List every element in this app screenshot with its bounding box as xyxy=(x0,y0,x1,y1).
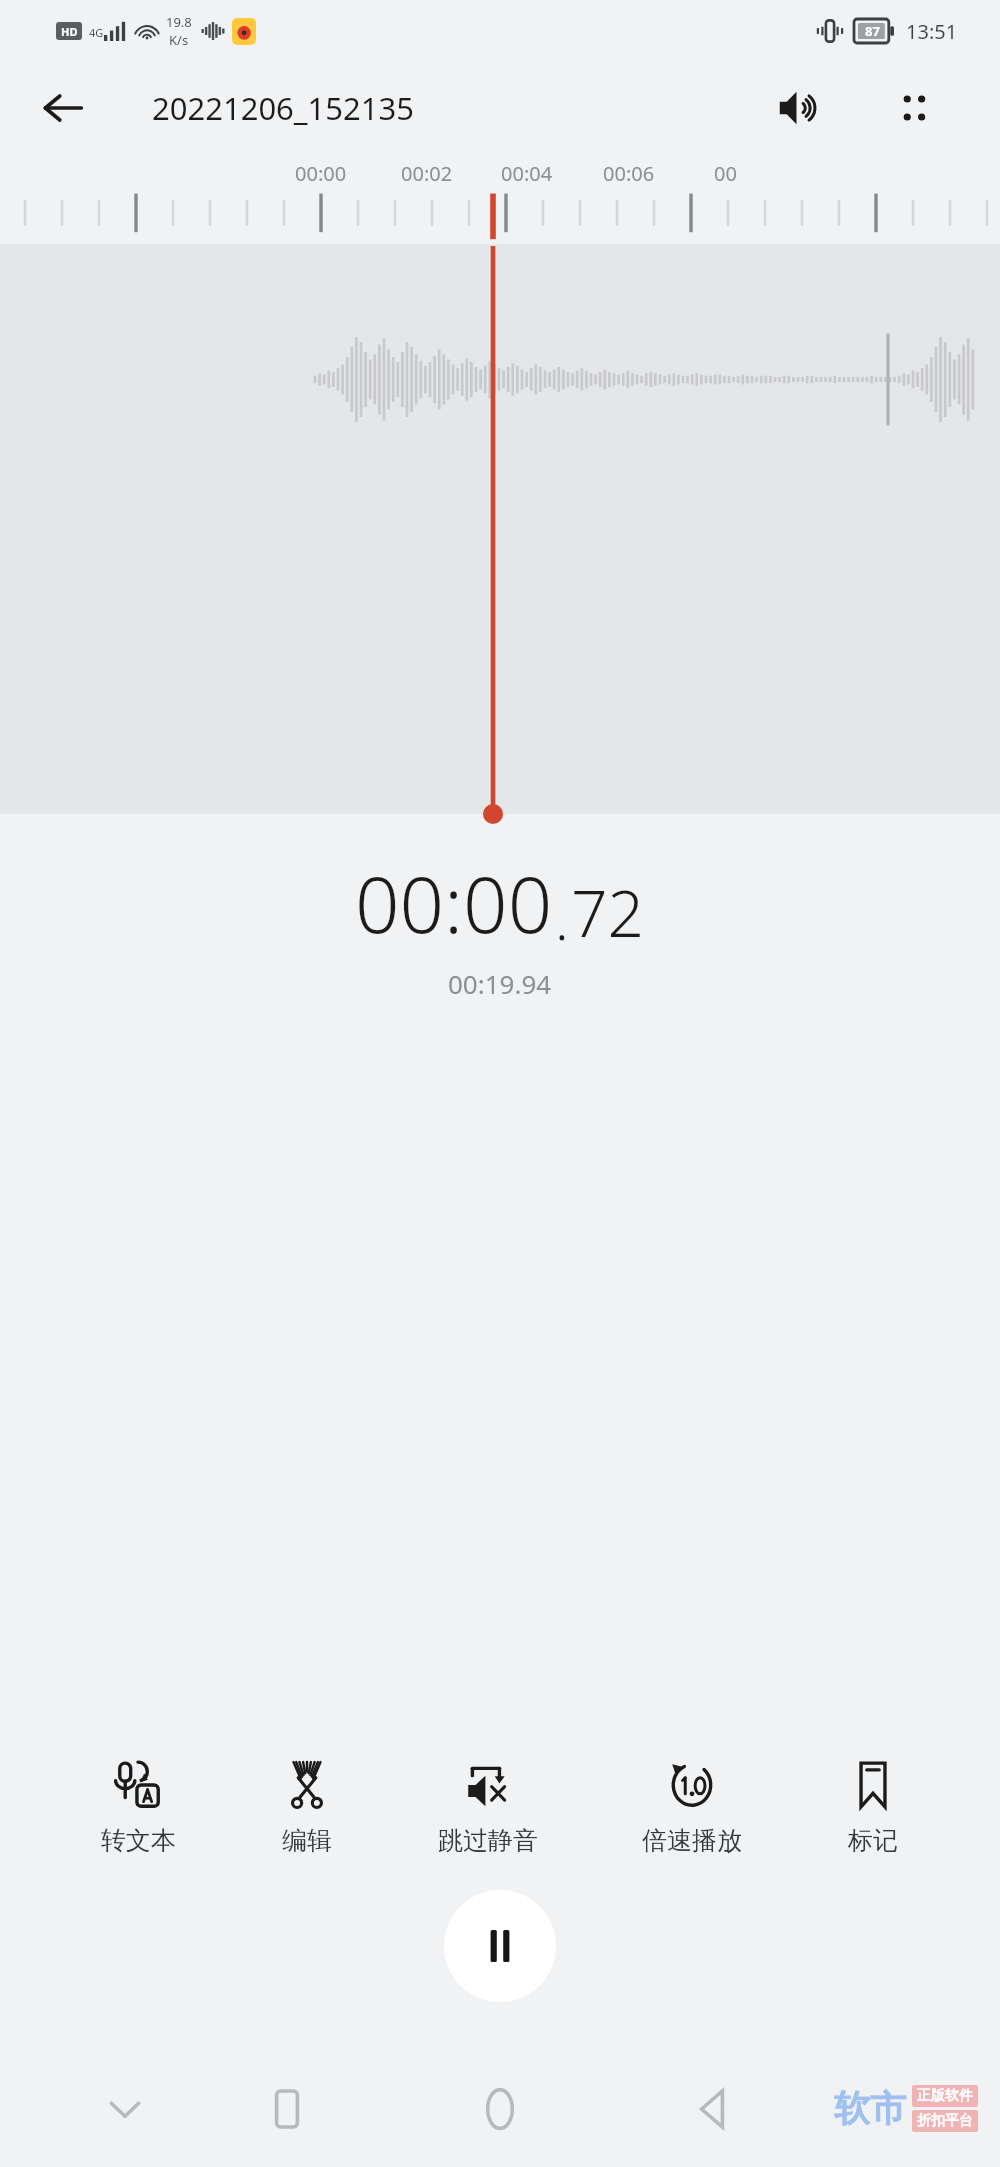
staticText: 软市 xyxy=(834,2086,906,2131)
staticText: 正版软件 xyxy=(917,2087,973,2105)
button[interactable]: 倍速播放 xyxy=(628,1749,756,1866)
button[interactable]: 跳过静音 xyxy=(424,1749,552,1866)
button[interactable]: Recent apps xyxy=(249,2071,325,2147)
staticText: 转文本 xyxy=(101,1825,176,1856)
staticText: 倍速播放 xyxy=(642,1825,742,1856)
button[interactable]: Back xyxy=(34,79,92,137)
staticText: 72 xyxy=(571,869,645,956)
staticText: 00:02 xyxy=(401,160,453,187)
button[interactable]: Collapse xyxy=(87,2071,163,2147)
staticText: 跳过静音 xyxy=(438,1825,538,1856)
staticText: 87 xyxy=(865,22,880,40)
staticText: 编辑 xyxy=(282,1825,332,1856)
staticText: 折扣平台 xyxy=(917,2112,973,2130)
button[interactable]: 编辑 xyxy=(267,1749,347,1866)
staticText: 标记 xyxy=(848,1825,898,1856)
staticText: 00:19.94 xyxy=(448,966,552,1001)
staticText: 13:51 xyxy=(906,18,958,45)
staticText: HD xyxy=(61,24,78,39)
button[interactable]: Speaker xyxy=(768,76,832,140)
button[interactable]: More options xyxy=(882,77,944,139)
staticText: 00:00 xyxy=(355,850,553,956)
button[interactable]: Home xyxy=(462,2071,538,2147)
staticText: K/s xyxy=(169,31,189,49)
staticText: 19.8 xyxy=(166,13,192,31)
staticText: 00 xyxy=(714,160,737,187)
button[interactable]: Back xyxy=(674,2071,750,2147)
staticText: 20221206_152135 xyxy=(152,87,415,129)
staticText: 00:04 xyxy=(501,160,553,187)
staticText: . xyxy=(555,880,569,956)
button[interactable]: 转文本 xyxy=(87,1749,190,1866)
staticText: 00:00 xyxy=(295,160,347,187)
staticText: 00:06 xyxy=(603,160,655,187)
staticText: 4G xyxy=(89,25,104,40)
button[interactable]: Pause xyxy=(444,1890,556,2002)
button[interactable]: 标记 xyxy=(833,1749,913,1866)
